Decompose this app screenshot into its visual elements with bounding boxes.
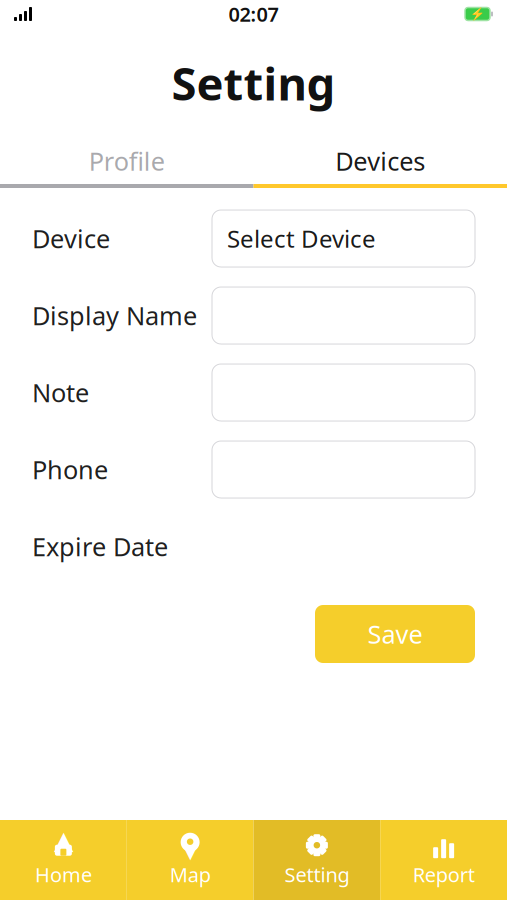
staticText: Save [367,617,422,651]
staticText: Setting [284,861,349,888]
staticText: 02:07 [228,1,278,27]
button[interactable] [212,287,475,344]
staticText: Setting [171,53,335,113]
button[interactable]: ▼ [127,820,254,900]
staticText: Display Name [32,299,197,332]
button[interactable]: Select Device [212,210,475,267]
button[interactable] [212,364,475,421]
button[interactable]: Report [380,820,507,900]
button[interactable]: Profile [0,138,253,184]
button[interactable]: Devices [253,138,507,184]
staticText: ▲ [54,826,73,855]
staticText: Expire Date [32,530,168,563]
button[interactable]: Setting [253,820,380,900]
staticText: Device [32,222,110,255]
staticText: Select Device [227,223,376,254]
staticText: Profile [89,144,165,178]
staticText: Devices [335,144,425,178]
staticText: Phone [32,453,108,486]
staticText: Map [170,861,211,888]
button[interactable]: Save [315,605,475,663]
staticText: ⚡ [470,7,485,21]
staticText: Report [413,861,475,888]
staticText: ▼ [184,842,197,862]
staticText: Home [35,861,92,888]
button[interactable]: ▲ [0,820,127,900]
staticText: Note [32,376,89,409]
button[interactable] [212,441,475,498]
